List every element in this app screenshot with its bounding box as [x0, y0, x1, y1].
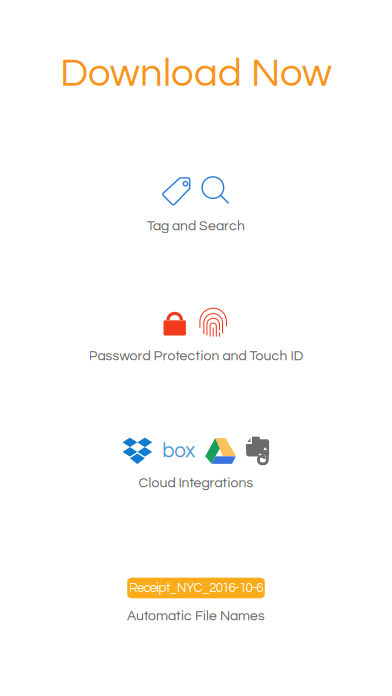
- staticText: Password Protection and Touch ID: [88, 349, 303, 363]
- staticText: Download Now: [60, 53, 332, 94]
- staticText: Cloud Integrations: [138, 476, 253, 490]
- staticText: Receipt_NYC_2016-10-6: [129, 581, 263, 595]
- staticText: Automatic File Names: [127, 609, 265, 623]
- staticText: box: [162, 440, 195, 462]
- staticText: Tag and Search: [147, 219, 245, 233]
